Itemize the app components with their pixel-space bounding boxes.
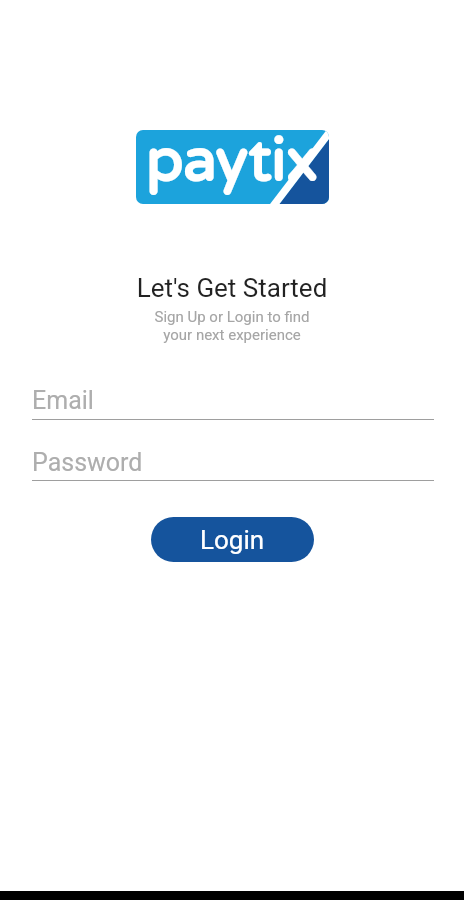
- staticText: Email: [32, 386, 94, 415]
- staticText: Password: [32, 448, 143, 477]
- button[interactable]: Password: [32, 448, 434, 482]
- button[interactable]: Login: [151, 517, 314, 562]
- staticText: paytix: [145, 130, 317, 198]
- button[interactable]: Email: [32, 386, 434, 421]
- staticText: Login: [200, 525, 265, 555]
- staticText: Let's Get Started: [0, 273, 464, 303]
- staticText: Sign Up or Login to find your next exper…: [0, 308, 464, 344]
